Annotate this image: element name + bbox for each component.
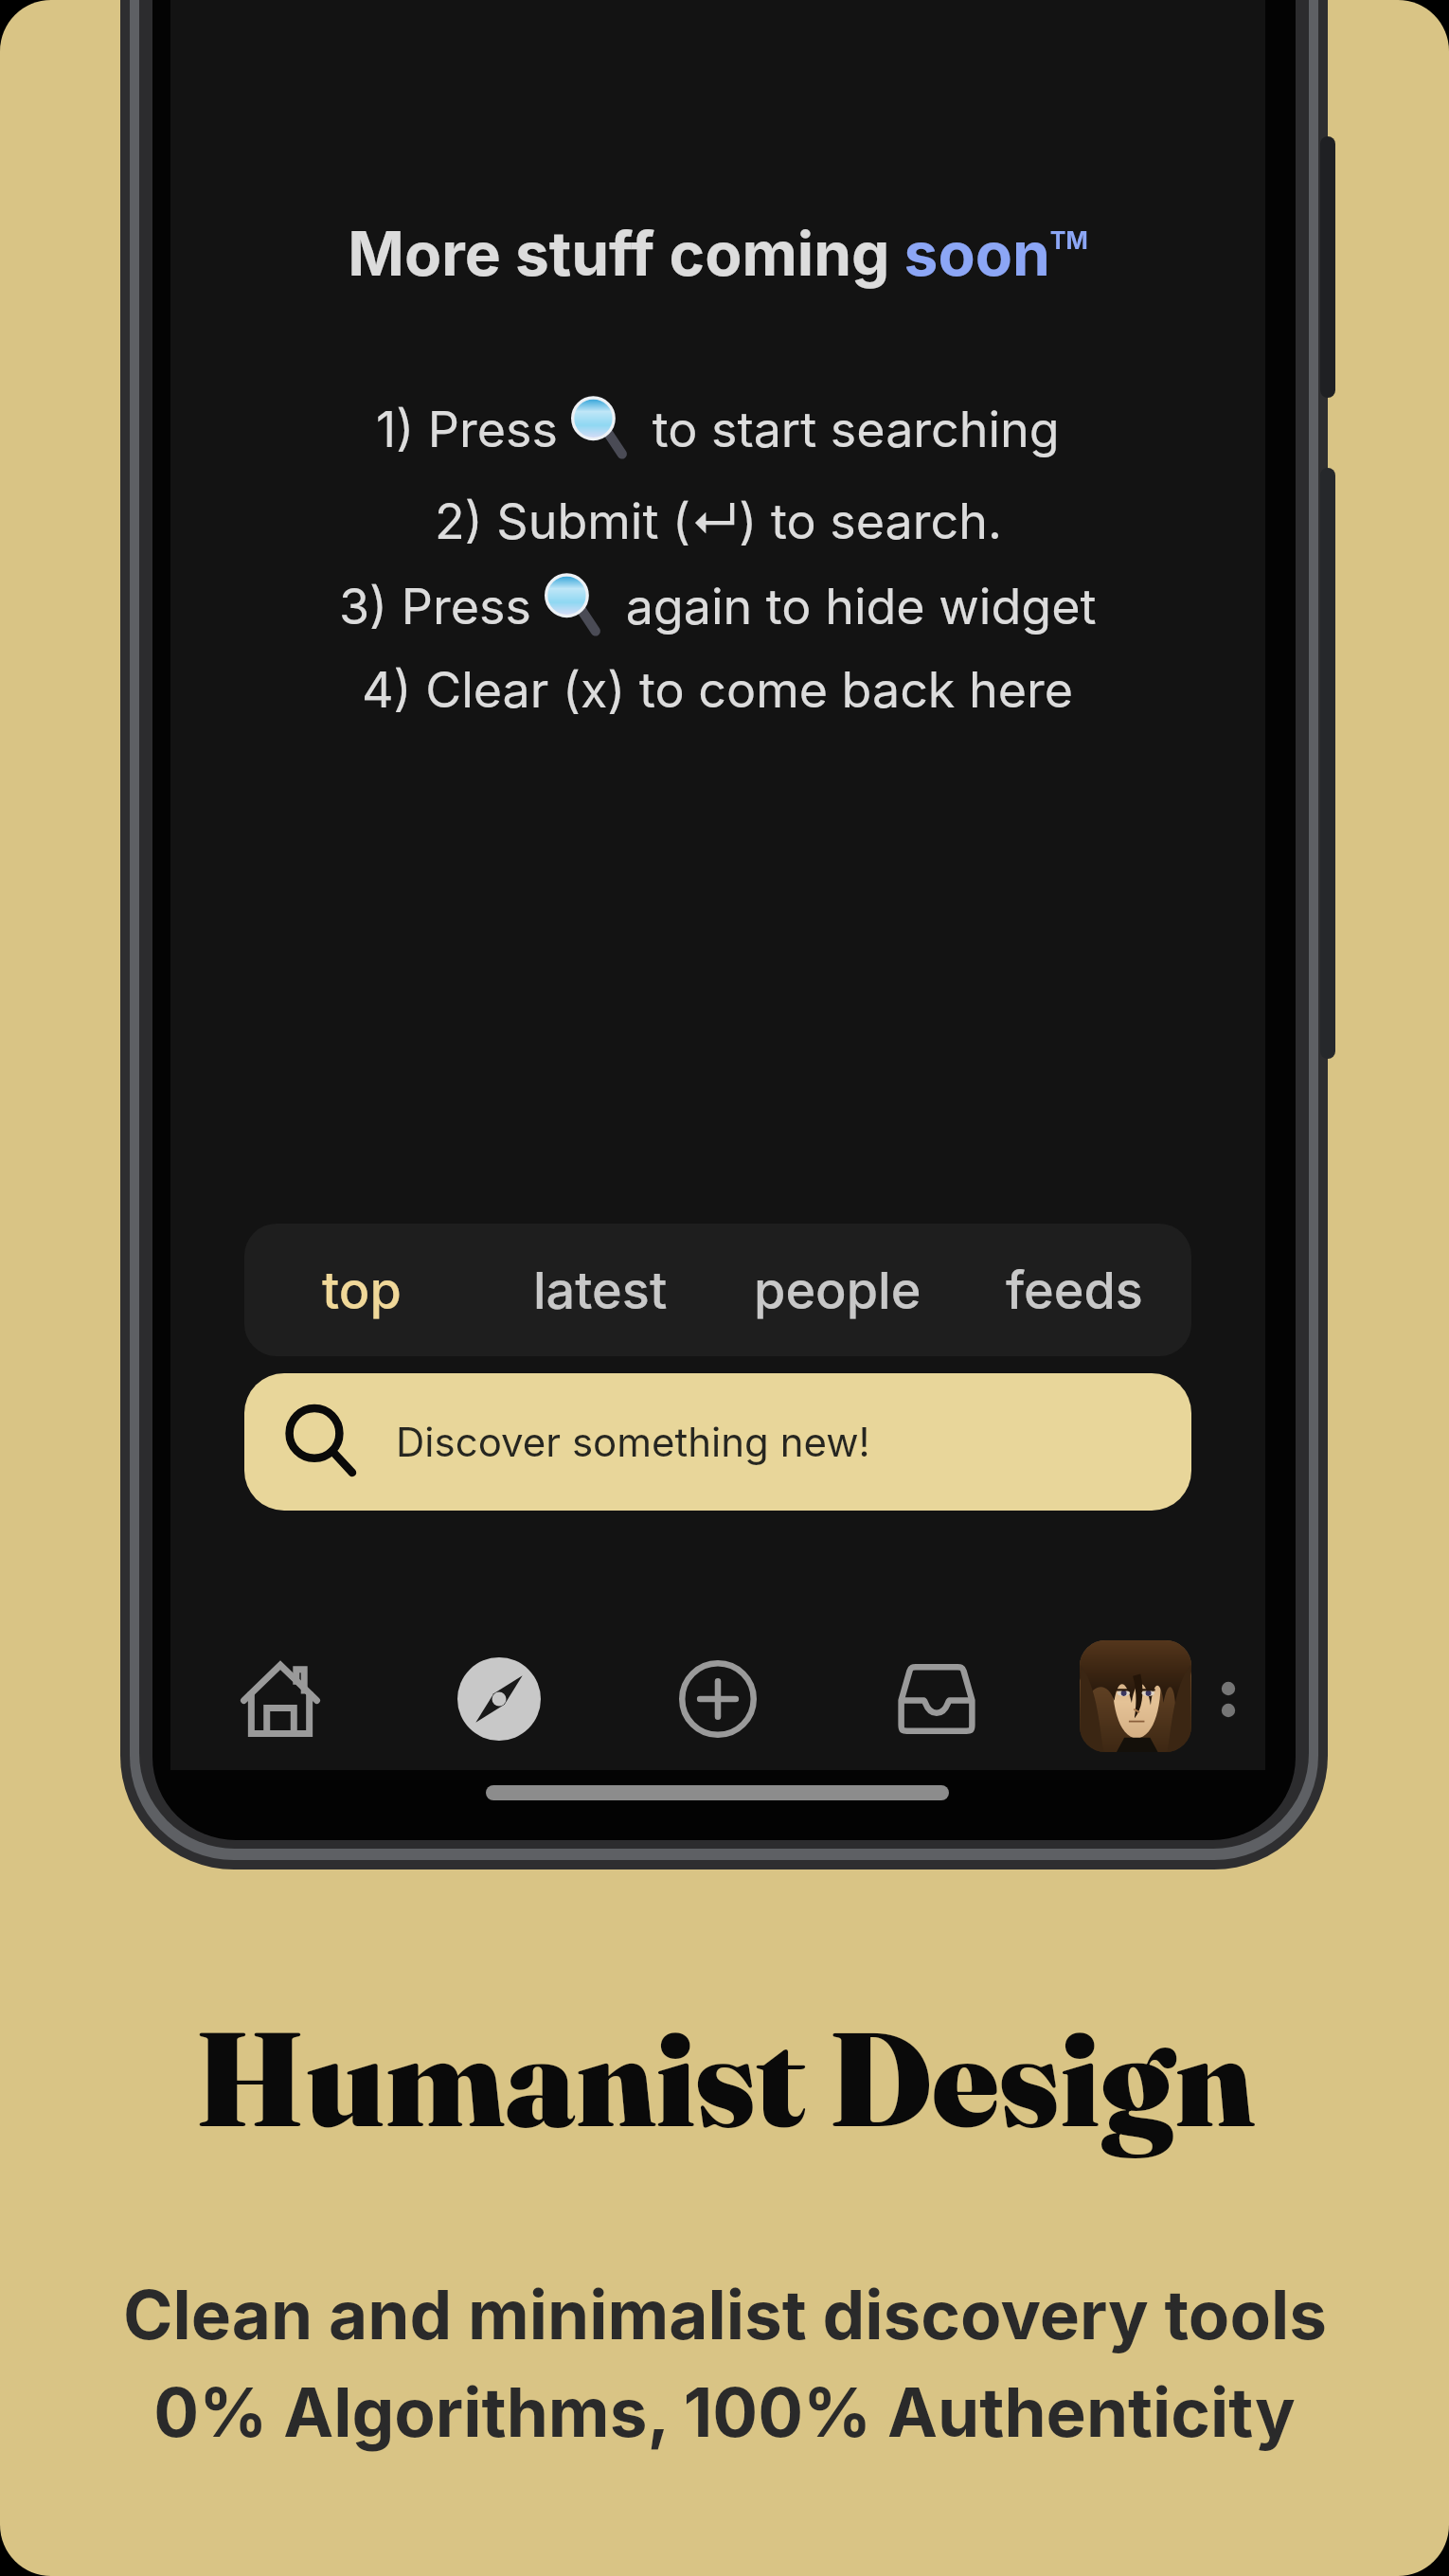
staticText: Clean and minimalist discovery tools (123, 2274, 1327, 2355)
staticText: people (754, 1260, 921, 1321)
staticText: 1) Press (376, 400, 572, 459)
button[interactable]: Inbox (870, 1644, 1003, 1754)
button[interactable]: Discover something new! (244, 1373, 1191, 1511)
staticText: 2) Submit (↵) to search. (435, 492, 1002, 551)
staticText: to start searching (638, 400, 1060, 459)
staticText: feeds (1006, 1260, 1143, 1321)
staticText: 3) Press (339, 577, 546, 636)
button[interactable]: feeds (975, 1224, 1173, 1356)
button[interactable]: Profile (1080, 1640, 1191, 1752)
staticText: Humanist Design (194, 1995, 1255, 2160)
button[interactable]: More options (1190, 1660, 1267, 1738)
staticText: 4) Clear (x) to come back here (362, 660, 1074, 720)
staticText: latest (533, 1260, 668, 1321)
button[interactable]: latest (501, 1224, 700, 1356)
button[interactable]: people (738, 1224, 937, 1356)
staticText: top (322, 1260, 402, 1321)
staticText: again to hide widget (612, 577, 1097, 636)
staticText: 0% Algorithms, 100% Authenticity (153, 2371, 1296, 2453)
button[interactable]: New post (652, 1644, 784, 1754)
button[interactable]: Home (214, 1644, 347, 1754)
button[interactable]: Discover (433, 1644, 565, 1754)
button[interactable]: top (262, 1224, 461, 1356)
staticText: More stuff coming soonTM (348, 217, 1088, 290)
staticText: Discover something new! (396, 1418, 870, 1466)
